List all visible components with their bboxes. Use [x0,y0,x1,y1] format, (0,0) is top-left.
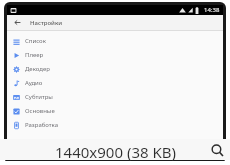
staticText: Настройки [30,19,63,27]
button[interactable]: Аудио [7,76,223,90]
staticText: Декодер [25,65,50,73]
staticText: Плеер [25,51,44,59]
staticText: 1440x900 (38 KB) [55,142,176,162]
staticText: 14:38 [204,6,220,14]
button[interactable]: Декодер [7,62,223,76]
staticText: Разработка [25,121,59,129]
button[interactable]: Back [11,16,24,29]
button[interactable]: Плеер [7,48,223,62]
button[interactable]: Субтитры [7,90,223,104]
staticText: Основные [25,107,55,115]
button[interactable]: Zoom [208,141,226,159]
staticText: Список [25,37,46,45]
button[interactable]: Основные [7,104,223,118]
button[interactable]: Список [7,34,223,48]
staticText: Субтитры [25,93,53,101]
button[interactable]: Разработка [7,118,223,132]
staticText: Аудио [25,79,43,87]
